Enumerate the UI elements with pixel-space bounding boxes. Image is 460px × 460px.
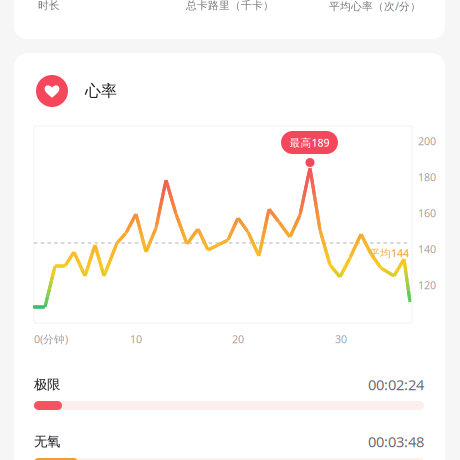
staticText: 平均144 xyxy=(369,246,409,260)
button[interactable]: 时长 xyxy=(38,0,60,19)
staticText: 无氧 xyxy=(34,433,60,450)
staticText: 200 xyxy=(418,134,436,148)
staticText: 心率 xyxy=(85,81,117,101)
staticText: 0(分钟) xyxy=(34,332,68,346)
staticText: 120 xyxy=(418,278,436,292)
staticText: 160 xyxy=(418,206,436,220)
button[interactable]: 无氧 xyxy=(34,434,424,460)
staticText: 20 xyxy=(232,332,244,346)
staticText: 时长 xyxy=(38,0,60,12)
button[interactable]: 极限 xyxy=(34,377,424,410)
staticText: 极限 xyxy=(34,376,60,393)
staticText: 平均心率（次/分） xyxy=(329,0,421,13)
staticText: 140 xyxy=(418,242,436,256)
button[interactable]: 心率 xyxy=(36,75,426,107)
staticText: 总卡路里（千卡） xyxy=(186,0,274,12)
staticText: 10 xyxy=(130,332,142,346)
staticText: 00:03:48 xyxy=(368,432,424,451)
staticText: 最高189 xyxy=(289,135,329,150)
staticText: 00:02:24 xyxy=(368,375,424,394)
button[interactable]: 平均心率（次/分） xyxy=(329,0,421,20)
staticText: 30 xyxy=(335,332,347,346)
staticText: 180 xyxy=(418,170,436,184)
button[interactable]: 总卡路里（千卡） xyxy=(186,0,274,19)
